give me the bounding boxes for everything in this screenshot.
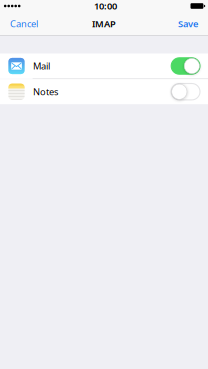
staticText: 10:00 (94, 0, 117, 12)
button[interactable]: Cancel (0, 12, 44, 35)
button[interactable]: Save (172, 12, 208, 35)
staticText: Save (178, 18, 198, 30)
staticText: Notes (33, 85, 58, 98)
staticText: Cancel (10, 18, 38, 30)
staticText: Mail (33, 60, 50, 72)
staticText: IMAP (92, 18, 116, 30)
button[interactable]: Mail (0, 53, 208, 78)
button[interactable]: Notes (0, 79, 208, 104)
